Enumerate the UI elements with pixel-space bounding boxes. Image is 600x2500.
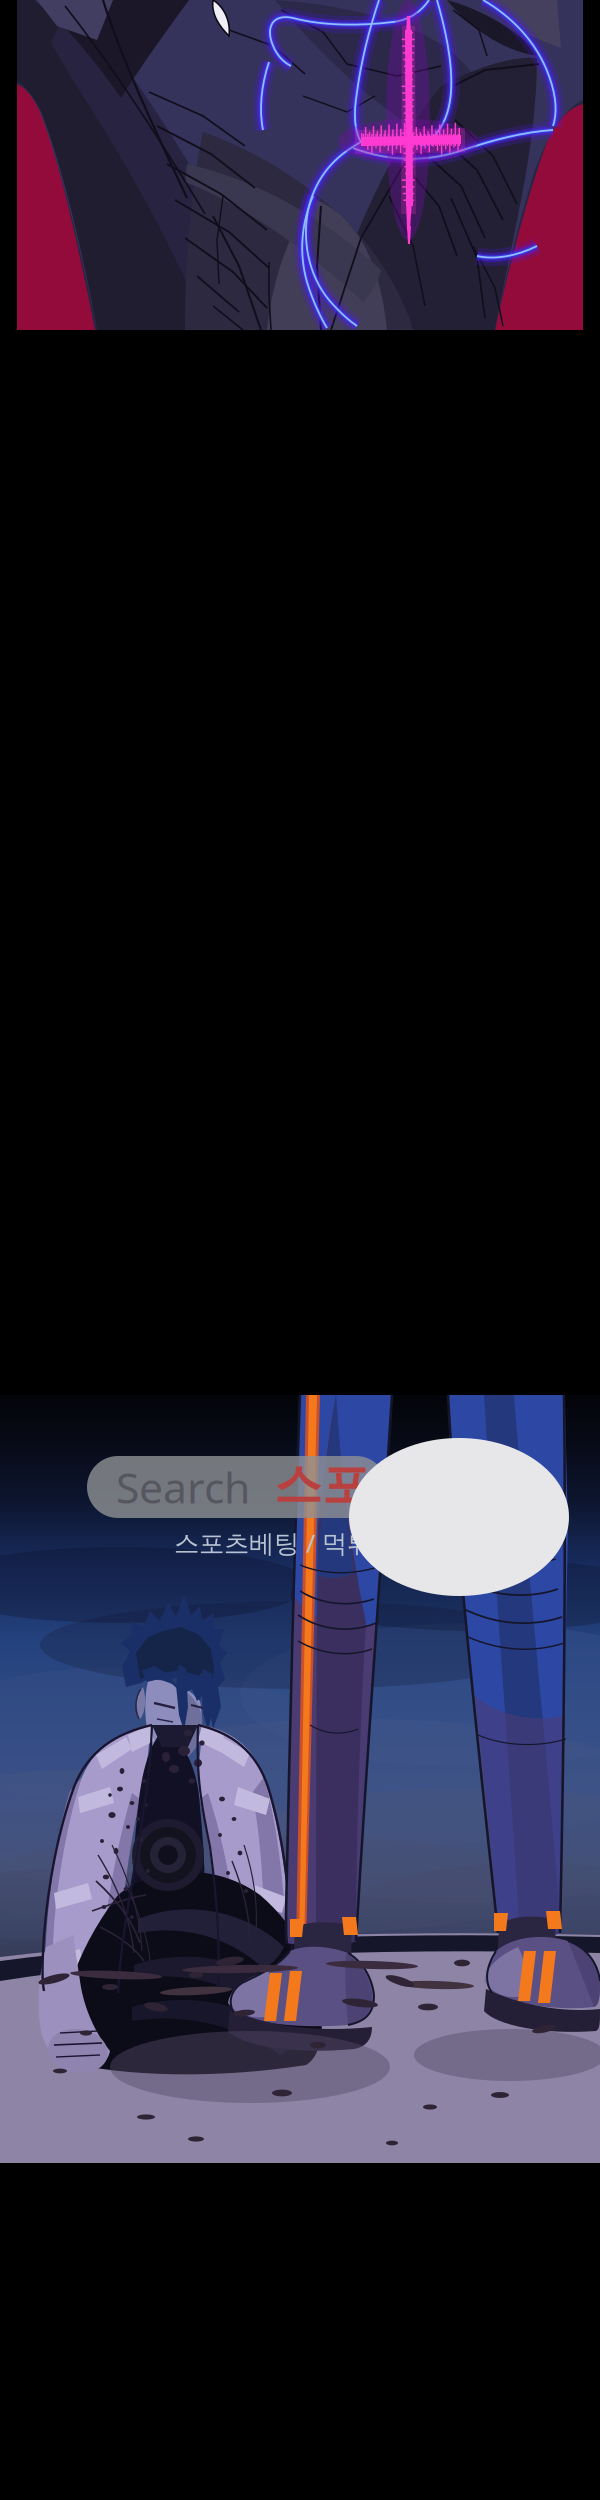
staticText: Search xyxy=(116,1459,250,1515)
staticText: 스포임 xyxy=(274,1455,418,1514)
staticText: 스포츠베팅 / 먹튀검증 커뮤니티 xyxy=(174,1526,530,1560)
button[interactable]: 스포임 xyxy=(274,1461,444,1509)
button[interactable]: Search xyxy=(87,1456,387,1518)
